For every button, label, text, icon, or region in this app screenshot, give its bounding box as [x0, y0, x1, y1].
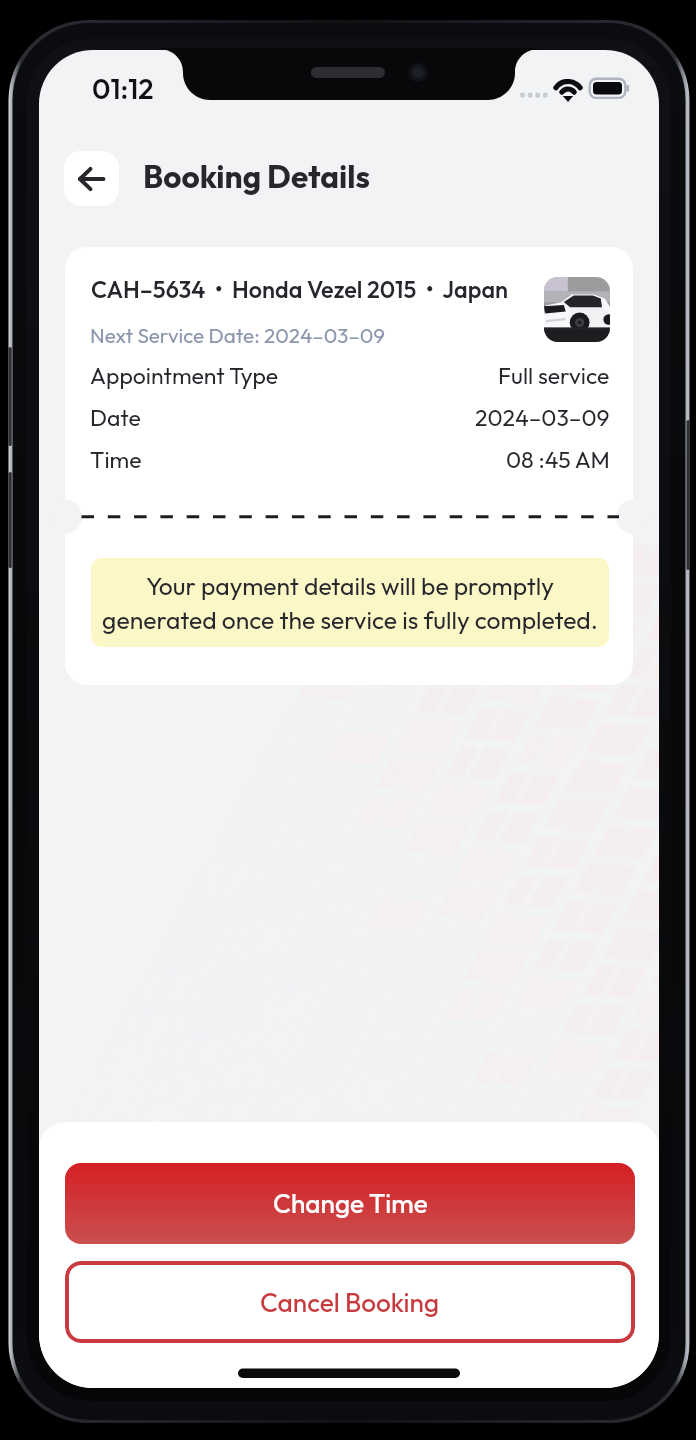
staticText: Booking Details: [143, 156, 370, 196]
staticText: Full service: [498, 361, 610, 390]
button[interactable]: Change Time: [65, 1163, 635, 1244]
button[interactable]: Back: [64, 151, 119, 206]
staticText: Time: [90, 445, 142, 474]
staticText: Date: [90, 403, 141, 432]
staticText: CAH–5634 • Honda Vezel 2015 • Japan: [91, 275, 509, 304]
staticText: Appointment Type: [90, 361, 279, 390]
staticText: Next Service Date: 2024–03–09: [90, 322, 385, 348]
staticText: Cancel Booking: [260, 1286, 440, 1319]
staticText: 08 :45 AM: [506, 445, 610, 474]
staticText: Change Time: [273, 1187, 428, 1220]
staticText: 01:12: [92, 71, 154, 106]
staticText: 2024–03–09: [475, 403, 610, 432]
button[interactable]: Cancel Booking: [65, 1261, 635, 1343]
staticText: Your payment details will be promptly ge…: [95, 570, 605, 635]
